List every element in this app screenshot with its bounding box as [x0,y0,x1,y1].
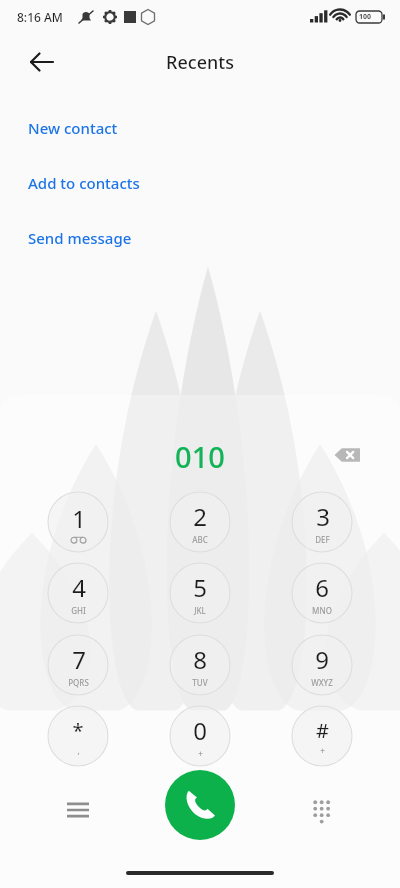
staticText: 9 [315,643,329,676]
staticText: 7 [72,643,86,676]
staticText: JKL [194,605,206,616]
staticText: 8:16 AM [17,9,63,25]
button[interactable]: 2 [167,489,233,555]
staticText: + [198,748,203,759]
button[interactable]: Back [18,38,66,86]
staticText: 1 [72,502,86,535]
staticText: GHI [71,605,86,616]
button[interactable]: 9 [289,632,355,698]
staticText: 0 [193,714,207,747]
staticText: 3 [316,500,330,533]
button[interactable]: 4 [45,560,111,626]
staticText: MNO [312,605,332,616]
staticText: 8 [193,643,207,676]
staticText: WXYZ [311,677,333,688]
button[interactable]: 5 [167,560,233,626]
button[interactable]: 3 [289,489,355,555]
button[interactable]: Backspace [323,431,371,479]
staticText: # [316,717,329,744]
staticText: , [77,745,80,756]
staticText: 6 [315,571,329,604]
staticText: Add to contacts [28,173,140,193]
staticText: * [72,717,84,744]
button[interactable]: Menu [54,786,102,834]
staticText: 100 [359,12,372,22]
button[interactable]: Dialpad [298,786,346,834]
staticText: 4 [72,571,86,604]
button[interactable]: Call [165,770,235,840]
staticText: 010 [175,437,225,476]
staticText: Send message [28,228,132,248]
staticText: New contact [28,118,118,138]
button[interactable]: Add to contacts [0,159,400,207]
button[interactable]: # [289,703,355,769]
staticText: 5 [193,571,207,604]
button[interactable]: New contact [0,104,400,152]
staticText: ABC [192,534,208,545]
button[interactable]: 7 [45,632,111,698]
staticText: + [320,745,325,756]
staticText: DEF [315,534,330,545]
staticText: Recents [166,50,234,75]
button[interactable]: 1 [45,489,111,555]
staticText: PQRS [68,677,89,688]
button[interactable]: * [45,703,111,769]
button[interactable]: 6 [289,560,355,626]
staticText: TUV [192,677,208,688]
button[interactable]: 8 [167,632,233,698]
button[interactable]: 0 [167,703,233,769]
button[interactable]: Send message [0,214,400,262]
staticText: 2 [193,500,207,533]
